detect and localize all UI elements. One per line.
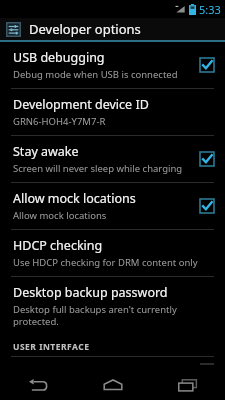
button[interactable]: Checked	[199, 57, 215, 73]
staticText: Stay awake	[13, 143, 79, 160]
button[interactable]: Developer options	[0, 18, 225, 40]
staticText: 5:33	[199, 2, 221, 17]
button[interactable]: Desktop backup password	[0, 277, 225, 335]
staticText: Screen will never sleep while charging	[13, 162, 183, 175]
staticText: HDCP checking	[13, 237, 103, 254]
staticText: Allow mock locations	[13, 190, 136, 207]
staticText: Debug mode when USB is connected	[13, 68, 178, 81]
button[interactable]: Stay awake	[0, 136, 225, 182]
staticText: Developer options	[29, 20, 141, 38]
staticText: Desktop backup password	[13, 284, 168, 301]
button[interactable]: Development device ID	[0, 89, 225, 135]
button[interactable]: Back	[0, 370, 75, 400]
staticText: USB debugging	[13, 49, 105, 66]
staticText: Allow mock locations	[13, 209, 107, 222]
button[interactable]: Allow mock locations	[0, 183, 225, 229]
staticText: GRN6-HOH4-Y7M7-R	[13, 115, 106, 128]
button[interactable]: Home	[75, 370, 150, 400]
staticText: Use HDCP checking for DRM content only	[13, 256, 198, 269]
button[interactable]: Checked	[199, 198, 215, 214]
button[interactable]: Strict mode enabled	[0, 357, 225, 370]
staticText: Desktop full backups aren't currently pr…	[13, 303, 215, 328]
staticText: Development device ID	[13, 96, 149, 113]
button[interactable]: Checked	[199, 151, 215, 167]
button[interactable]: Recent apps	[150, 370, 225, 400]
staticText: USER INTERFACE	[13, 341, 90, 353]
button[interactable]: HDCP checking	[0, 230, 225, 276]
button[interactable]: USB debugging	[0, 42, 225, 88]
